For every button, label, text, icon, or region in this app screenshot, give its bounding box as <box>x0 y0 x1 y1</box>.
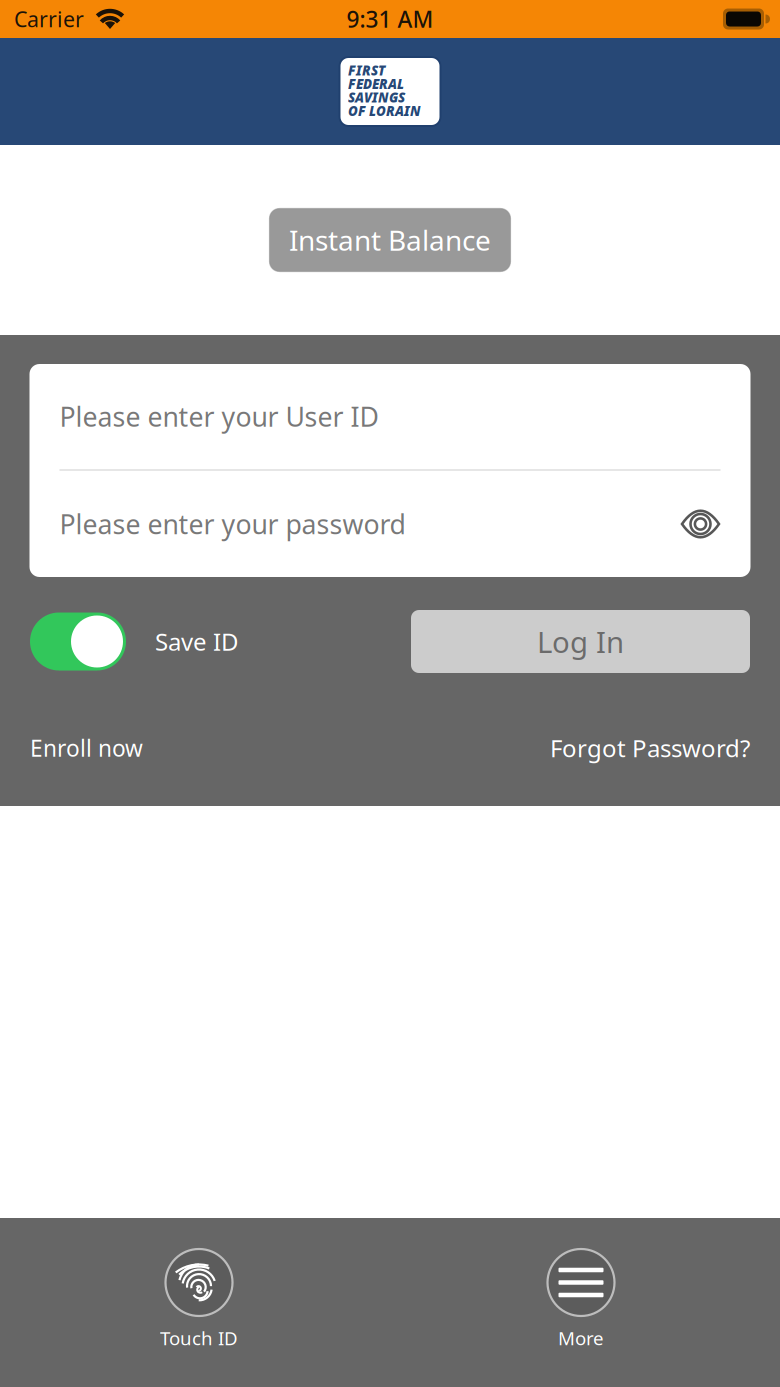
staticText: Instant Balance <box>289 221 491 259</box>
staticText: SAVINGS <box>348 88 405 106</box>
staticText: Save ID <box>155 626 239 657</box>
button[interactable]: Please enter your password <box>59 471 680 577</box>
staticText: FIRST <box>348 61 385 79</box>
button[interactable]: Forgot Password? <box>550 732 750 764</box>
staticText: Forgot Password? <box>550 732 750 764</box>
button[interactable]: Enroll now <box>30 733 143 763</box>
button[interactable]: Please enter your User ID <box>29 364 750 469</box>
button[interactable]: More <box>506 1249 656 1348</box>
staticText: OF LORAIN <box>348 102 421 120</box>
staticText: Carrier <box>14 5 84 33</box>
button[interactable]: Log In <box>411 610 750 673</box>
button[interactable]: Touch ID <box>124 1249 274 1348</box>
staticText: FEDERAL <box>348 75 404 93</box>
staticText: Please enter your User ID <box>59 399 378 434</box>
staticText: More <box>558 1326 604 1350</box>
staticText: 9:31 AM <box>346 4 433 34</box>
button[interactable]: Show password <box>680 509 720 539</box>
staticText: Please enter your password <box>59 506 405 542</box>
button[interactable]: Save ID <box>30 612 239 670</box>
staticText: Log In <box>537 622 624 661</box>
staticText: Enroll now <box>30 733 143 763</box>
staticText: Touch ID <box>160 1326 238 1350</box>
button[interactable]: Instant Balance <box>269 208 510 271</box>
